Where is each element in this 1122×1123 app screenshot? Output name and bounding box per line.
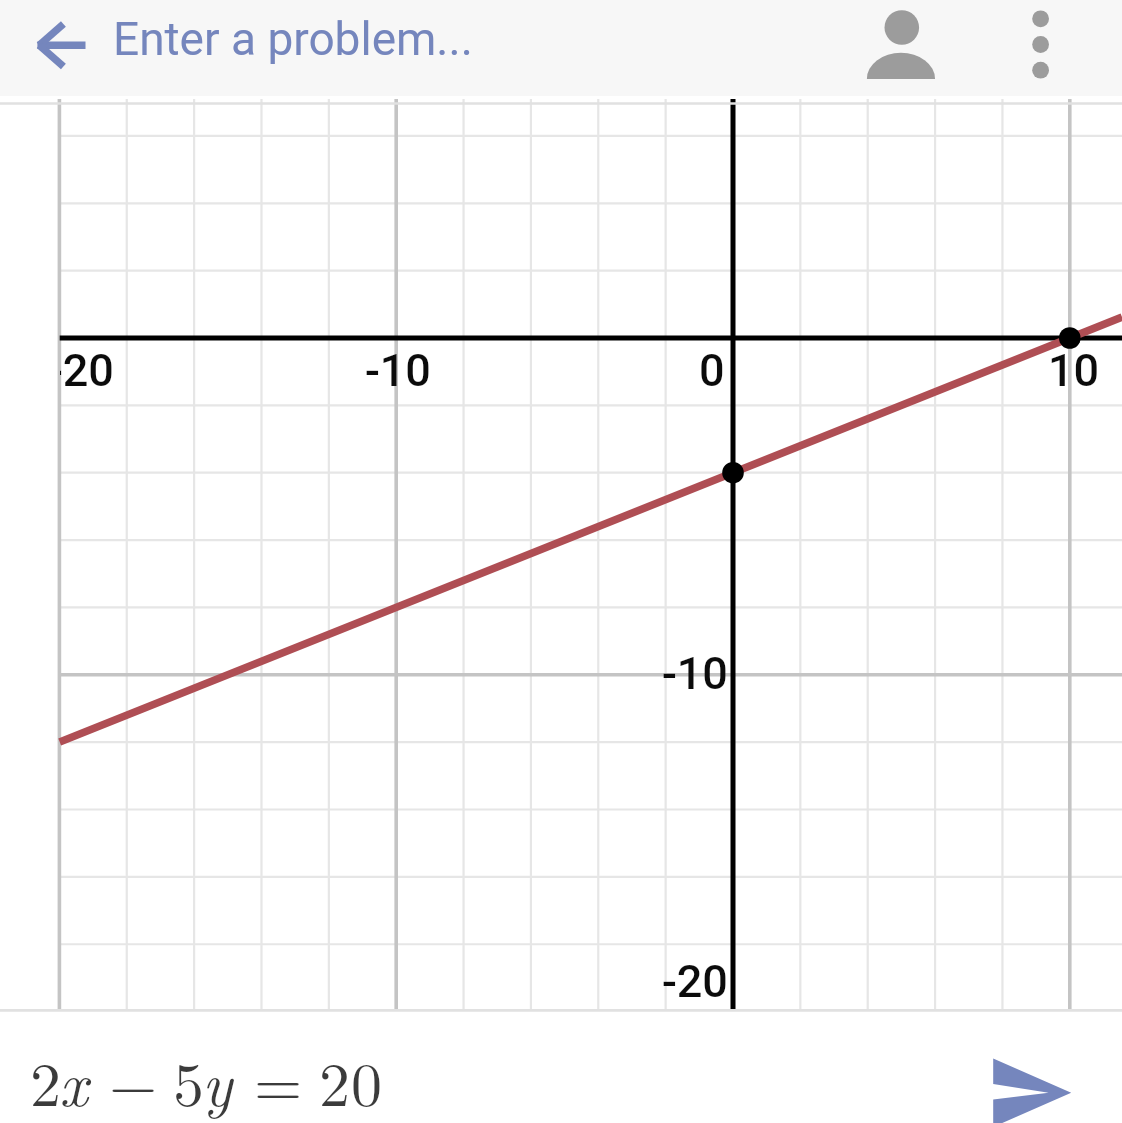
- staticText: -10: [662, 647, 728, 700]
- button[interactable]: More options: [1006, 0, 1076, 96]
- staticText: −: [109, 1036, 158, 1123]
- button[interactable]: Send: [968, 1040, 1098, 1123]
- staticText: 0: [351, 1036, 383, 1123]
- staticText: -20: [60, 344, 114, 397]
- staticText: y: [202, 1036, 233, 1123]
- staticText: -10: [365, 344, 431, 397]
- staticText: =: [254, 1036, 303, 1123]
- button[interactable]: 2: [0, 1012, 940, 1123]
- staticText: Enter a problem...: [113, 12, 473, 66]
- staticText: 2: [30, 1036, 62, 1123]
- button[interactable]: Account: [856, 0, 946, 96]
- button[interactable]: Back: [14, 6, 108, 90]
- staticText: -20: [662, 955, 728, 1008]
- staticText: 10: [1048, 344, 1100, 397]
- staticText: x: [59, 1036, 88, 1123]
- staticText: 2: [319, 1036, 351, 1123]
- staticText: 5: [173, 1036, 205, 1123]
- staticText: 0: [699, 344, 725, 397]
